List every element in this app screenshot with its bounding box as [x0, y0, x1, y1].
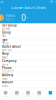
staticText: Tier group [2, 24, 17, 27]
button[interactable]: Search [11, 87, 22, 100]
staticText: Phone [2, 66, 12, 70]
staticText: 9:41 [0, 0, 5, 4]
staticText: Account [2, 80, 13, 84]
button[interactable]: Home [0, 87, 11, 100]
staticText: Alerts [37, 95, 41, 97]
staticText: Home [4, 95, 8, 97]
staticText: Orders [25, 95, 31, 97]
staticText: Main [2, 77, 8, 80]
staticText: Customer Account Details [10, 6, 45, 10]
staticText: Shop [2, 52, 9, 56]
staticText: J [0, 15, 1, 20]
staticText: Company [2, 59, 16, 63]
staticText: Tier 2 [6, 18, 14, 21]
staticText: pts [26, 17, 28, 18]
staticText: Main [2, 56, 8, 59]
button[interactable]: Me [45, 87, 56, 100]
staticText: Balance [6, 14, 16, 17]
button[interactable]: Back [0, 4, 2, 11]
staticText: Acme [2, 63, 9, 66]
staticText: Group [2, 31, 11, 34]
staticText: ‹ [0, 4, 1, 12]
staticText: Retail [2, 27, 10, 31]
staticText: Not set [2, 48, 12, 52]
staticText: Address [2, 73, 13, 77]
button[interactable]: Alerts [34, 87, 45, 100]
staticText: 555019 [2, 70, 14, 73]
staticText: Basic [2, 84, 8, 87]
staticText: Me [49, 95, 51, 97]
staticText: Shop [2, 41, 9, 45]
button[interactable]: Orders [22, 87, 34, 100]
staticText: Outlet school [2, 45, 21, 48]
staticText: Type [2, 38, 8, 41]
staticText: ıll ⌃ ▮ [50, 0, 56, 4]
staticText: Std [2, 34, 6, 38]
staticText: 0 [21, 12, 26, 23]
